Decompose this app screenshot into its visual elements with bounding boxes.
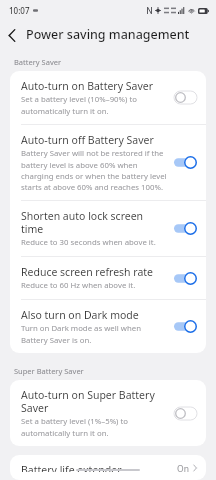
button[interactable]: Auto-turn on Battery Saver (10, 71, 206, 124)
button[interactable]: Switch on (174, 320, 197, 333)
staticText: Auto-turn off Battery Saver (21, 133, 154, 147)
button[interactable]: Shorten auto lock screen time (10, 201, 206, 256)
staticText: Battery Saver will not be restored if th… (21, 148, 168, 192)
staticText: Reduce screen refresh rate (21, 265, 154, 279)
staticText: Shorten auto lock screen time (21, 209, 168, 236)
staticText: Battery Saver (14, 57, 62, 67)
button[interactable]: Switch on (174, 222, 197, 235)
staticText: Turn on Dark mode as well when Battery S… (21, 323, 168, 345)
button[interactable]: Reduce screen refresh rate (10, 257, 206, 299)
staticText: Reduce to 30 seconds when above it. (21, 237, 156, 248)
button[interactable]: Auto-turn on Super Battery Saver (10, 380, 206, 446)
button[interactable]: Switch off (174, 91, 197, 104)
staticText: Also turn on Dark mode (21, 308, 139, 322)
button[interactable]: Battery life extender (10, 455, 206, 480)
button[interactable]: Also turn on Dark mode (10, 300, 206, 353)
button[interactable]: Switch off (174, 407, 197, 420)
button[interactable]: Auto-turn off Battery Saver (10, 125, 206, 200)
staticText: Auto-turn on Battery Saver (21, 79, 154, 93)
staticText: Reduce to 60 Hz when above it. (21, 280, 136, 291)
button[interactable]: Back (0, 23, 24, 47)
staticText: Super Battery Saver (14, 366, 84, 376)
staticText: Set a battery level (10%–90%) to automat… (21, 94, 168, 116)
staticText: Battery life extender (21, 463, 122, 472)
staticText: Set a battery level (1%–5%) to automatic… (21, 416, 168, 438)
button[interactable]: Switch on (174, 156, 197, 169)
staticText: Auto-turn on Super Battery Saver (21, 388, 168, 415)
staticText: On (177, 463, 189, 472)
button[interactable]: Switch on (174, 272, 197, 285)
staticText: 10:07 (9, 5, 30, 16)
staticText: Power saving management (26, 26, 190, 43)
